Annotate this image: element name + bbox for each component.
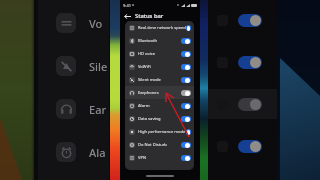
staticText: High performance mode <box>138 129 186 135</box>
staticText: Data saving <box>138 116 161 122</box>
button[interactable] <box>208 47 277 77</box>
button[interactable]: Ear <box>56 99 109 119</box>
staticText: VPN <box>138 155 147 161</box>
button[interactable]: Back <box>122 11 132 21</box>
staticText: Status bar <box>135 12 164 20</box>
button[interactable]: Real-time network speed <box>129 21 191 34</box>
staticText: Real-time network speed <box>138 25 186 31</box>
staticText: Ear <box>89 102 107 117</box>
button[interactable]: Ala <box>56 142 109 162</box>
staticText: Silent mode <box>138 77 161 83</box>
staticText: VoW <box>89 16 109 31</box>
staticText: Do Not Disturb <box>138 142 167 148</box>
staticText: Earphones <box>138 90 159 96</box>
staticText: Alarm <box>138 103 150 109</box>
button[interactable]: Earphones <box>129 86 191 99</box>
button[interactable]: High performance mode <box>129 125 191 138</box>
button[interactable] <box>208 89 277 119</box>
button[interactable]: VoWiFi <box>129 60 191 73</box>
button[interactable] <box>208 131 277 161</box>
button[interactable]: VoW <box>56 13 109 33</box>
button[interactable] <box>208 5 277 35</box>
button[interactable]: Data saving <box>129 112 191 125</box>
staticText: Bluetooth <box>138 38 157 44</box>
button[interactable]: Bluetooth <box>129 34 191 47</box>
button[interactable]: Sile <box>56 56 109 76</box>
button[interactable]: VPN <box>129 151 191 164</box>
staticText: 9:41 <box>123 3 131 8</box>
button[interactable]: HD voice <box>129 47 191 60</box>
staticText: HD voice <box>138 51 155 57</box>
staticText: Sile <box>89 59 108 74</box>
button[interactable]: Silent mode <box>129 73 191 86</box>
button[interactable]: Alarm <box>129 99 191 112</box>
staticText: Ala <box>89 145 106 160</box>
button[interactable]: Do Not Disturb <box>129 138 191 151</box>
staticText: VoWiFi <box>138 64 151 70</box>
